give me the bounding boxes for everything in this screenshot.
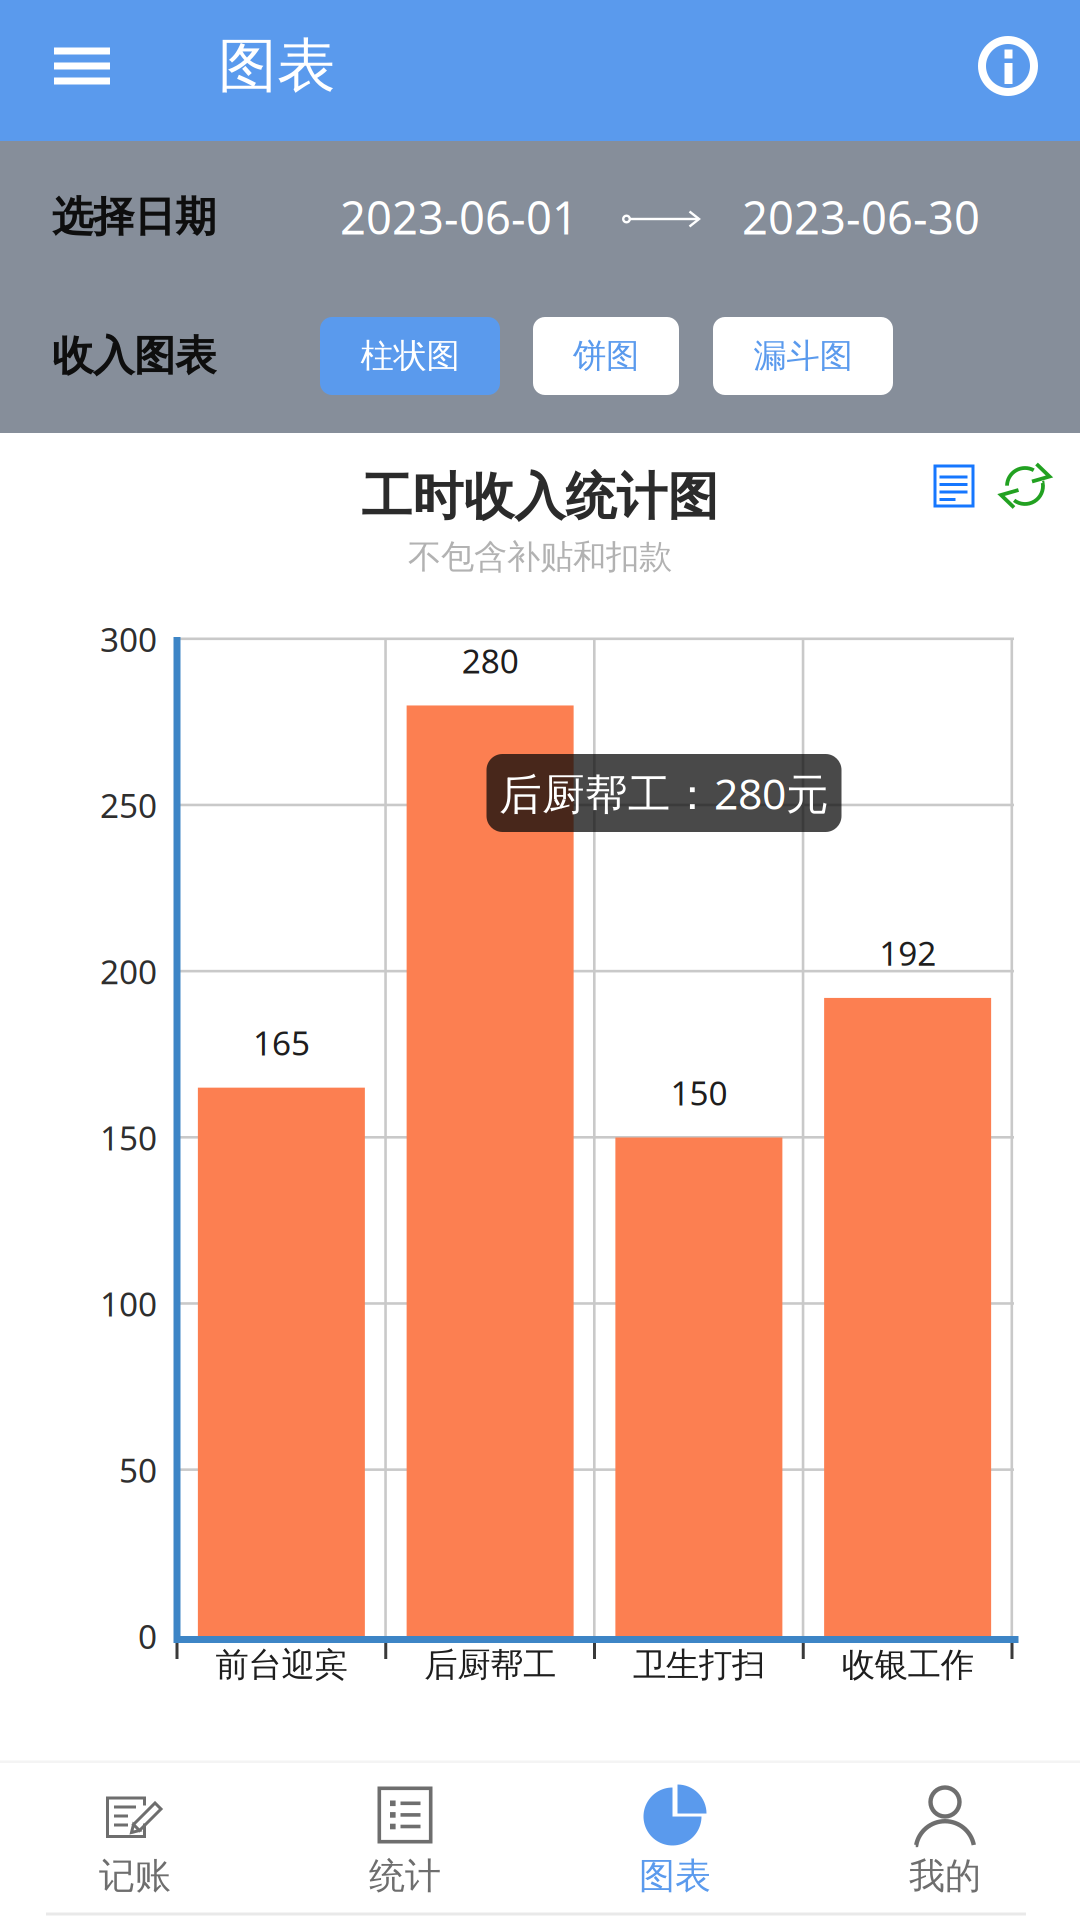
staticText: 192 xyxy=(879,931,936,975)
button[interactable]: 统计 xyxy=(270,1763,540,1920)
staticText: 150 xyxy=(100,1115,157,1160)
staticText: 图表 xyxy=(218,30,336,102)
staticText: 165 xyxy=(253,1020,310,1065)
button[interactable]: 柱状图 xyxy=(320,317,500,395)
staticText: 300 xyxy=(100,617,157,661)
staticText: 250 xyxy=(100,783,157,827)
staticText: 150 xyxy=(670,1070,727,1115)
button[interactable]: Detail list xyxy=(922,454,986,518)
staticText: 0 xyxy=(138,1614,157,1658)
staticText: 280 xyxy=(462,638,519,683)
staticText: 柱状图 xyxy=(360,335,459,376)
staticText: 前台迎宾 xyxy=(215,1644,347,1685)
staticText: 后厨帮工：280元 xyxy=(499,765,829,821)
staticText: 我的 xyxy=(909,1854,981,1898)
staticText: 工时收入统计图 xyxy=(361,466,718,528)
staticText: 选择日期 xyxy=(52,192,216,242)
staticText: 收入图表 xyxy=(52,331,216,381)
staticText: 2023-06-30 xyxy=(742,187,980,247)
staticText: 200 xyxy=(100,949,157,993)
button[interactable]: Info xyxy=(953,0,1063,131)
button[interactable]: 记账 xyxy=(0,1763,270,1920)
staticText: 100 xyxy=(100,1281,157,1326)
staticText: 漏斗图 xyxy=(753,335,852,376)
button[interactable]: Refresh xyxy=(993,454,1057,518)
staticText: 不包含补贴和扣款 xyxy=(408,536,672,577)
staticText: 50 xyxy=(119,1448,157,1492)
button[interactable]: 图表 xyxy=(540,1763,810,1920)
button[interactable]: 我的 xyxy=(810,1763,1080,1920)
staticText: 2023-06-01 xyxy=(340,187,578,247)
staticText: 收银工作 xyxy=(842,1644,974,1685)
staticText: 图表 xyxy=(639,1854,711,1898)
staticText: 饼图 xyxy=(573,335,639,376)
staticText: 后厨帮工 xyxy=(424,1644,556,1685)
button[interactable]: 饼图 xyxy=(533,317,679,395)
staticText: 统计 xyxy=(369,1854,441,1898)
staticText: 卫生打扫 xyxy=(633,1644,765,1685)
button[interactable]: Menu xyxy=(17,0,147,131)
staticText: 记账 xyxy=(99,1854,171,1898)
button[interactable]: 漏斗图 xyxy=(713,317,893,395)
